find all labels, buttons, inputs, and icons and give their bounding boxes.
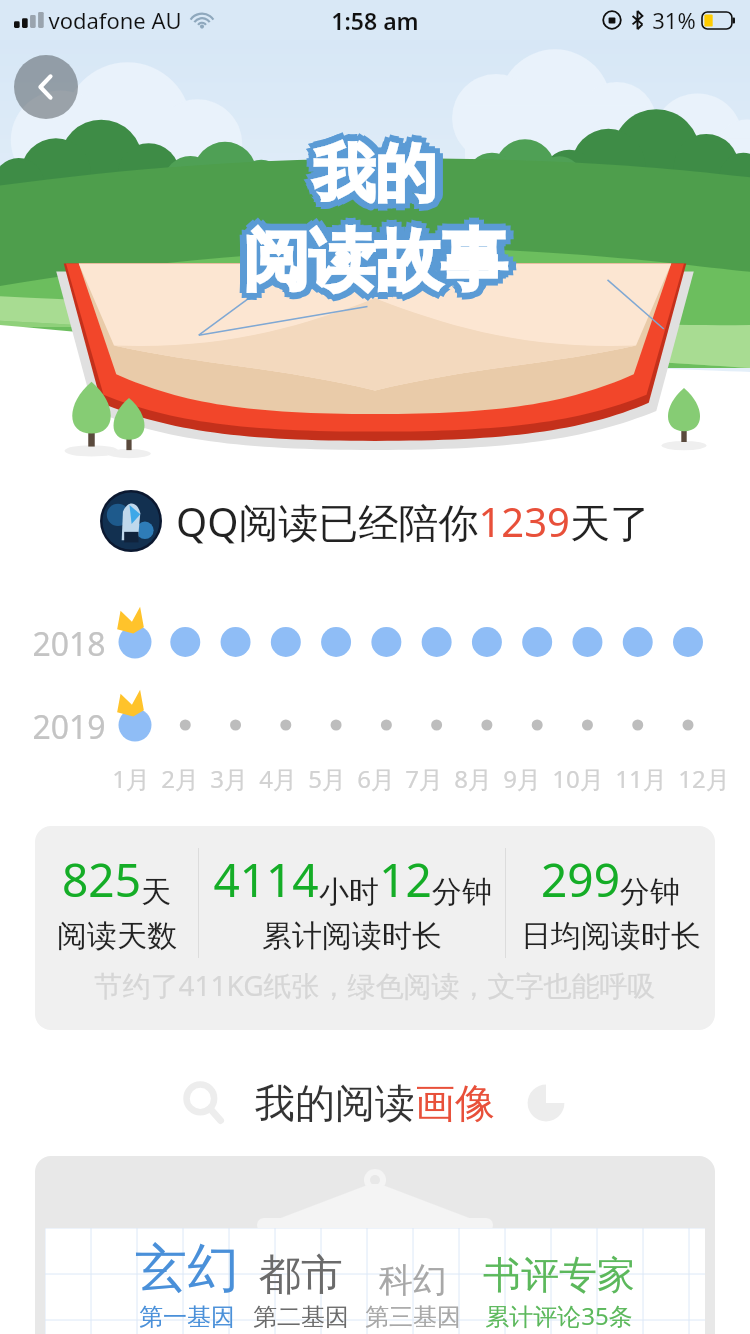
staticText: 2月 xyxy=(161,762,199,795)
staticText: 书评专家 xyxy=(483,1251,635,1299)
staticText: 阅读故事 xyxy=(243,219,507,302)
staticText: 我的阅读画像 xyxy=(255,1078,495,1128)
staticText: 科幻 xyxy=(379,1259,447,1302)
staticText: 累计阅读时长 xyxy=(262,917,442,955)
staticText: 第二基因 xyxy=(253,1302,349,1332)
staticText: 31% xyxy=(652,5,696,35)
staticText: 6月 xyxy=(357,762,395,795)
staticText: 我的 xyxy=(321,135,445,213)
staticText: 阅读故事 xyxy=(251,219,515,302)
staticText: 9月 xyxy=(503,762,541,795)
button[interactable]: 825 xyxy=(35,826,715,1030)
staticText: 分钟 xyxy=(620,873,680,911)
staticText: 第一基因 xyxy=(139,1302,235,1332)
staticText: 5月 xyxy=(308,762,346,795)
staticText: 我的 xyxy=(318,130,442,208)
staticText: 825 xyxy=(62,848,141,911)
staticText: vodafone AU xyxy=(48,5,182,35)
staticText: 我的 xyxy=(308,130,432,208)
staticText: 我的 xyxy=(313,130,437,208)
staticText: 阅读故事 xyxy=(248,219,512,302)
staticText: 第三基因 xyxy=(365,1302,461,1332)
staticText: 阅读故事 xyxy=(243,226,507,309)
staticText: 阅读故事 xyxy=(236,219,500,302)
staticText: QQ阅读已经陪你1239天了 xyxy=(176,494,650,549)
staticText: 我的 xyxy=(313,135,437,213)
staticText: 我的 xyxy=(313,128,437,206)
staticText: 阅读故事 xyxy=(248,214,512,297)
staticText: 天 xyxy=(141,873,171,911)
staticText: 阅读故事 xyxy=(238,214,502,297)
staticText: 11月 xyxy=(615,762,667,795)
staticText: 玄幻 xyxy=(135,1236,239,1302)
staticText: 4月 xyxy=(259,762,297,795)
staticText: 小时 xyxy=(319,873,379,911)
staticText: 都市 xyxy=(259,1249,343,1302)
staticText: 2019 xyxy=(32,705,106,749)
staticText: 节约了411KG纸张，绿色阅读，文字也能呼吸 xyxy=(94,966,656,1004)
staticText: 阅读故事 xyxy=(243,224,507,307)
button[interactable]: 玄幻 xyxy=(35,1156,715,1334)
staticText: 4114 xyxy=(213,848,319,911)
staticText: 日均阅读时长 xyxy=(521,917,701,955)
staticText: 阅读故事 xyxy=(248,224,512,307)
staticText: 我的 xyxy=(318,140,442,218)
staticText: 阅读故事 xyxy=(238,224,502,307)
staticText: 12 xyxy=(379,848,432,911)
staticText: 阅读故事 xyxy=(238,219,502,302)
staticText: 7月 xyxy=(405,762,443,795)
button[interactable]: Back xyxy=(14,55,78,119)
staticText: 10月 xyxy=(552,762,604,795)
staticText: 阅读故事 xyxy=(243,212,507,295)
staticText: 3月 xyxy=(210,762,248,795)
staticText: 我的 xyxy=(308,140,432,218)
staticText: 2018 xyxy=(32,622,106,666)
staticText: 12月 xyxy=(678,762,730,795)
staticText: 1月 xyxy=(112,762,150,795)
staticText: 我的 xyxy=(313,142,437,220)
staticText: 1:58 am xyxy=(331,5,419,36)
staticText: 8月 xyxy=(454,762,492,795)
staticText: 累计评论35条 xyxy=(485,1299,633,1332)
staticText: 我的 xyxy=(313,140,437,218)
staticText: 阅读天数 xyxy=(57,917,177,955)
staticText: 我的 xyxy=(306,135,430,213)
staticText: 299 xyxy=(541,848,620,911)
staticText: 我的 xyxy=(318,135,442,213)
staticText: 我的 xyxy=(308,135,432,213)
staticText: 阅读故事 xyxy=(243,214,507,297)
staticText: 分钟 xyxy=(432,873,492,911)
